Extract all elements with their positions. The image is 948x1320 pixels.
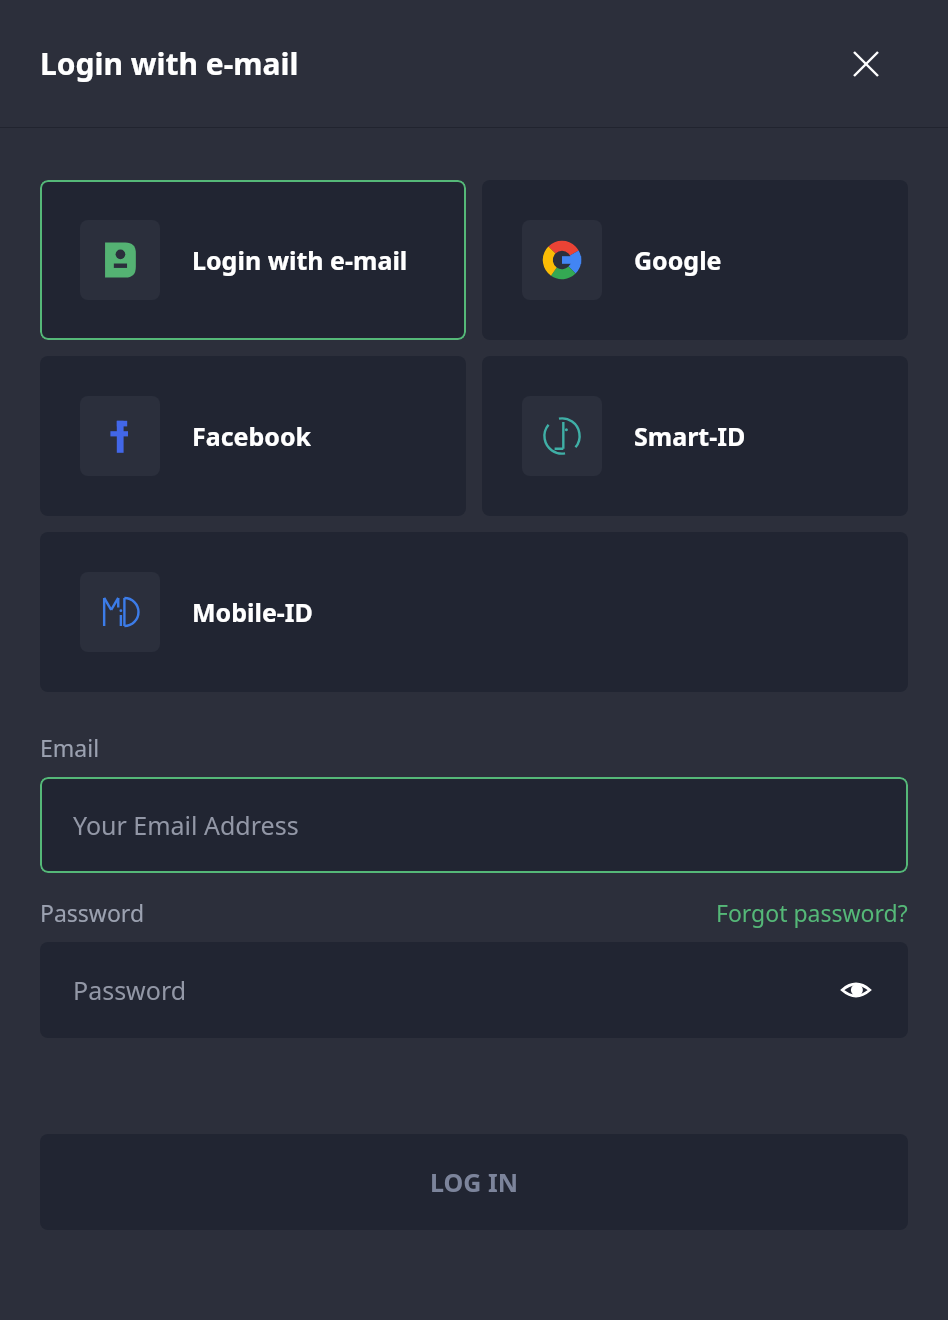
button[interactable]: Login with e-mail — [40, 180, 466, 340]
staticText: Login with e-mail — [40, 43, 299, 84]
staticText: Password — [40, 897, 145, 928]
button[interactable]: Google — [482, 180, 908, 340]
staticText: Facebook — [192, 419, 312, 453]
button[interactable]: LOG IN — [40, 1134, 908, 1230]
button[interactable]: Close — [844, 42, 888, 86]
staticText: Password — [73, 973, 187, 1007]
staticText: Google — [634, 243, 722, 277]
button[interactable]: Mobile-ID — [40, 532, 908, 692]
button[interactable]: Show password — [834, 968, 878, 1012]
staticText: Forgot password? — [716, 897, 908, 928]
staticText: Smart-ID — [634, 419, 746, 453]
button[interactable]: Your Email Address — [40, 777, 908, 873]
button[interactable]: Password — [40, 942, 908, 1038]
staticText: Login with e-mail — [192, 243, 408, 277]
button[interactable]: Smart-ID — [482, 356, 908, 516]
staticText: LOG IN — [430, 1165, 518, 1199]
staticText: Email — [40, 732, 100, 763]
button[interactable]: Forgot password? — [716, 897, 908, 928]
staticText: Mobile-ID — [192, 595, 313, 629]
button[interactable]: Facebook — [40, 356, 466, 516]
staticText: Your Email Address — [73, 808, 299, 842]
